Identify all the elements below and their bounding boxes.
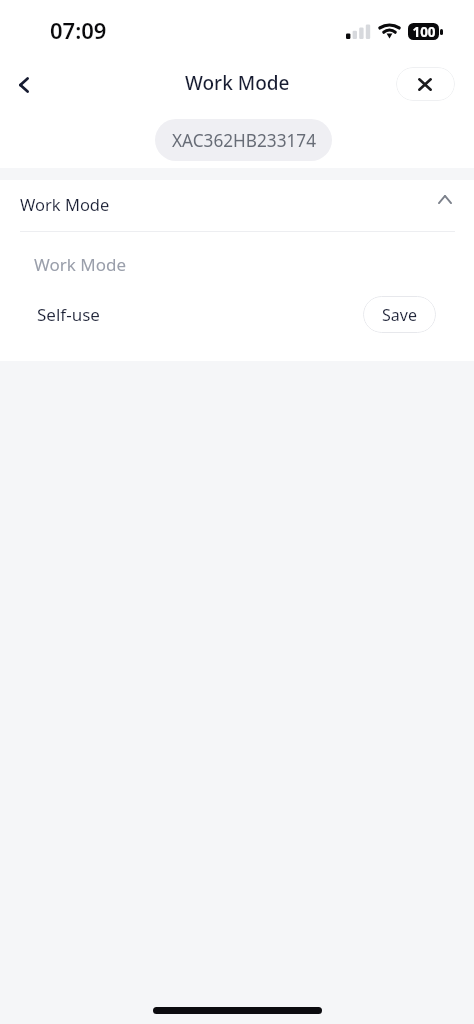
button[interactable]: XAC362HB233174 xyxy=(155,119,332,161)
staticText: 100 xyxy=(412,23,436,40)
staticText: Work Mode xyxy=(185,70,290,96)
button[interactable]: Self-use xyxy=(20,287,350,342)
button[interactable]: Work Mode xyxy=(0,181,474,229)
button[interactable]: Back xyxy=(2,63,46,107)
staticText: Self-use xyxy=(37,303,100,326)
staticText: Work Mode xyxy=(34,253,127,276)
button[interactable]: Save xyxy=(363,296,436,333)
staticText: Work Mode xyxy=(20,193,110,215)
staticText: 07:09 xyxy=(50,15,107,45)
staticText: Save xyxy=(382,304,417,326)
button[interactable]: Close xyxy=(396,67,455,101)
staticText: XAC362HB233174 xyxy=(172,129,316,152)
